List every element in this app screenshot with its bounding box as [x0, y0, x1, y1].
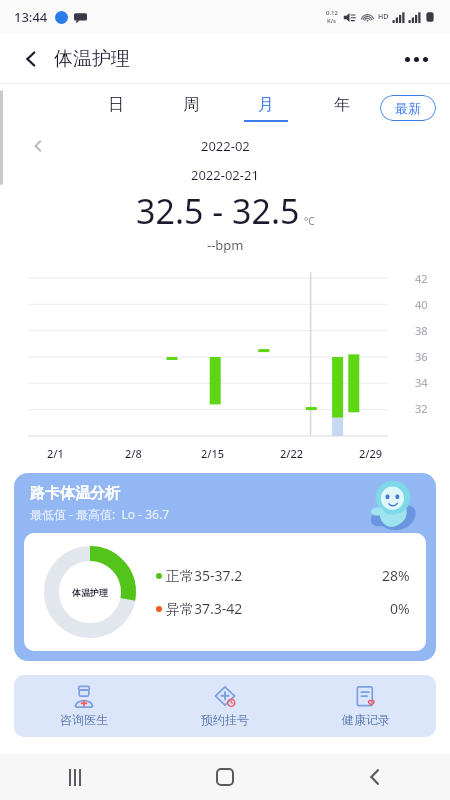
staticText: 日: [108, 95, 124, 115]
staticText: 34: [415, 375, 428, 390]
staticText: 2/15: [201, 446, 225, 461]
button[interactable]: Home: [150, 754, 300, 800]
button[interactable]: 预约挂号: [154, 675, 295, 737]
staticText: 13:44: [14, 8, 48, 26]
staticText: 0.12: [326, 9, 338, 17]
staticText: 28%: [382, 566, 410, 585]
staticText: 最新: [395, 100, 421, 116]
staticText: 年: [334, 95, 350, 115]
staticText: 40: [415, 297, 428, 312]
staticText: 咨询医生: [60, 712, 108, 727]
staticText: 体温护理: [72, 587, 108, 598]
button[interactable]: Recent apps: [0, 754, 150, 800]
staticText: --bpm: [207, 236, 244, 254]
staticText: 32.5 - 32.5: [136, 188, 300, 234]
staticText: 0%: [390, 599, 410, 618]
staticText: 2022-02-21: [191, 166, 259, 184]
staticText: 月: [258, 95, 274, 115]
button[interactable]: 日: [78, 84, 153, 132]
button[interactable]: 路卡体温分析: [14, 473, 436, 661]
staticText: 2022-02: [201, 137, 250, 155]
staticText: 正常35-37.2: [166, 566, 243, 585]
staticText: 38: [415, 323, 428, 338]
staticText: 2/29: [359, 446, 383, 461]
staticText: 2/1: [47, 446, 64, 461]
button[interactable]: 年: [304, 84, 380, 132]
staticText: 路卡体温分析: [30, 484, 120, 503]
staticText: HD: [378, 12, 389, 22]
button[interactable]: 周: [153, 84, 228, 132]
button[interactable]: Back: [300, 754, 450, 800]
staticText: K/s: [327, 17, 337, 25]
button[interactable]: Previous month: [24, 132, 52, 160]
staticText: 预约挂号: [201, 712, 249, 727]
staticText: 周: [183, 95, 199, 115]
staticText: 体温护理: [54, 47, 130, 71]
button[interactable]: More options: [396, 39, 436, 79]
staticText: 36: [415, 349, 428, 364]
button[interactable]: Back: [14, 42, 48, 76]
staticText: 32: [415, 401, 428, 416]
staticText: 42: [415, 271, 428, 286]
button[interactable]: 月: [228, 84, 304, 132]
staticText: 2/8: [125, 446, 142, 461]
button[interactable]: 咨询医生: [14, 675, 154, 737]
staticText: 异常37.3-42: [166, 599, 243, 618]
staticText: 健康记录: [342, 712, 390, 727]
staticText: 2/22: [280, 446, 304, 461]
button[interactable]: 健康记录: [295, 675, 436, 737]
staticText: 最低值 - 最高值: Lo - 36.7: [30, 506, 170, 522]
button[interactable]: 最新: [380, 95, 436, 121]
staticText: °C: [304, 214, 315, 228]
